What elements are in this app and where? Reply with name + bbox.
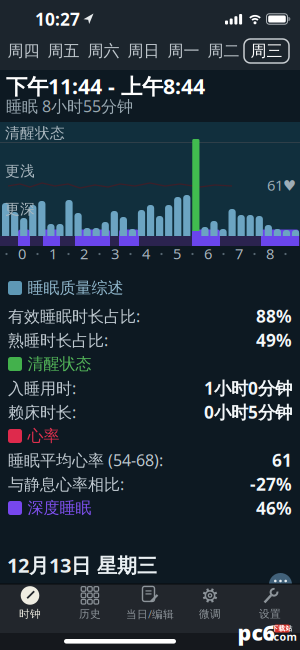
- staticText: 历史: [79, 607, 101, 620]
- staticText: 周四: [7, 41, 39, 61]
- staticText: 时钟: [19, 607, 41, 620]
- staticText: 周三: [250, 41, 282, 61]
- staticText: 周二: [207, 41, 239, 61]
- button[interactable]: 周一: [163, 38, 203, 63]
- staticText: 下载站: [271, 624, 292, 633]
- button[interactable]: 当日/编辑: [120, 585, 180, 621]
- staticText: 周五: [47, 41, 79, 61]
- button[interactable]: 周二: [203, 38, 243, 63]
- staticText: 3: [111, 244, 119, 263]
- staticText: 睡眠 8小时55分钟: [6, 95, 133, 117]
- staticText: 深度睡眠: [27, 498, 91, 518]
- button[interactable]: 时钟: [0, 585, 60, 621]
- staticText: 8: [266, 244, 274, 263]
- button[interactable]: 周四: [3, 38, 43, 63]
- staticText: 睡眠平均心率 (54-68):: [8, 449, 163, 471]
- staticText: 2: [80, 244, 88, 263]
- staticText: 熟睡时长占比:: [8, 329, 108, 351]
- staticText: -27%: [250, 472, 292, 495]
- staticText: 下午11:44 - 上午8:44: [6, 72, 205, 100]
- staticText: 6: [204, 244, 212, 263]
- staticText: 49%: [256, 328, 292, 351]
- staticText: 更深: [5, 200, 35, 218]
- button[interactable]: 周五: [43, 38, 83, 63]
- staticText: 更浅: [5, 162, 35, 180]
- staticText: 10:27: [35, 7, 80, 30]
- button[interactable]: 历史: [60, 585, 120, 621]
- staticText: pc6: [237, 618, 275, 647]
- staticText: 5: [173, 244, 181, 263]
- staticText: 0: [18, 244, 26, 263]
- staticText: 微调: [199, 607, 221, 620]
- staticText: 88%: [256, 304, 292, 327]
- button[interactable]: 更多: [268, 569, 292, 584]
- staticText: 有效睡眠时长占比:: [8, 305, 140, 327]
- staticText: 与静息心率相比:: [8, 473, 124, 495]
- staticText: 入睡用时:: [8, 377, 76, 399]
- button[interactable]: 设置: [240, 585, 300, 621]
- button[interactable]: 周三: [243, 38, 289, 63]
- staticText: 0小时5分钟: [204, 400, 292, 423]
- staticText: 清醒状态: [5, 124, 65, 142]
- staticText: 清醒状态: [27, 354, 91, 374]
- button[interactable]: 周日: [123, 38, 163, 63]
- staticText: 当日/编辑: [126, 607, 174, 621]
- staticText: 1小时0分钟: [204, 376, 292, 399]
- staticText: 周日: [127, 41, 159, 61]
- staticText: 61: [272, 448, 292, 471]
- staticText: 12月13日 星期三: [7, 552, 157, 578]
- button[interactable]: 周六: [83, 38, 123, 63]
- button[interactable]: 微调: [180, 585, 240, 621]
- staticText: 46%: [256, 496, 292, 519]
- staticText: 4: [142, 244, 150, 263]
- staticText: 设置: [259, 607, 281, 620]
- staticText: .com: [270, 629, 296, 644]
- staticText: 赖床时长:: [8, 401, 76, 423]
- staticText: 61♥: [267, 175, 296, 195]
- staticText: 周一: [167, 41, 199, 61]
- staticText: 7: [235, 244, 243, 263]
- staticText: 睡眠质量综述: [27, 278, 123, 298]
- staticText: 周六: [87, 41, 119, 61]
- staticText: 1: [49, 244, 57, 263]
- staticText: 心率: [27, 426, 59, 446]
